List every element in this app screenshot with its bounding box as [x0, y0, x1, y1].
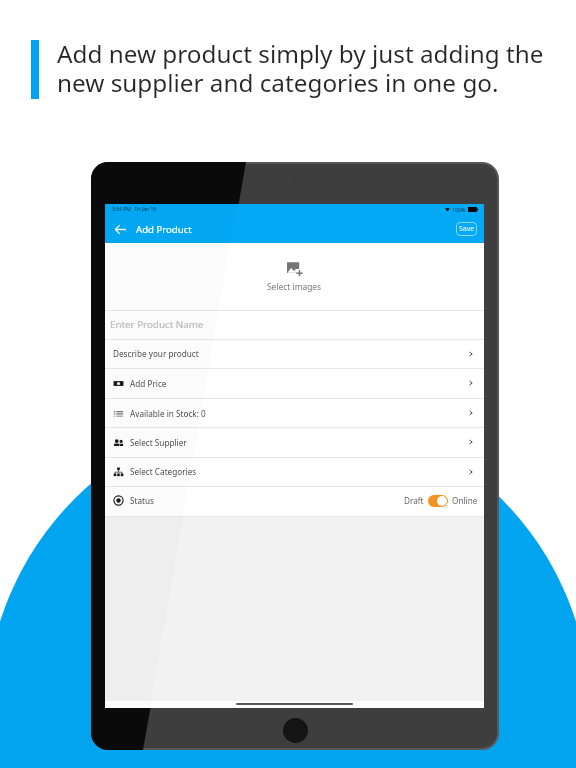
button[interactable]: Available in Stock: 0	[105, 398, 484, 428]
staticText: Available in Stock: 0	[130, 408, 206, 419]
staticText: Describe your product	[113, 348, 199, 359]
button[interactable]	[428, 495, 448, 507]
staticText: Add Product	[136, 223, 192, 236]
other: Home	[283, 718, 308, 743]
staticText: 3:54 PM Fri Jan 15	[112, 206, 157, 213]
staticText: 100%	[452, 206, 466, 213]
staticText: Online	[452, 495, 478, 506]
button[interactable]: Select images	[105, 243, 484, 310]
staticText: Save	[459, 224, 475, 234]
staticText: Status	[130, 495, 154, 506]
staticText: Draft	[404, 495, 424, 506]
staticText: Select Categories	[130, 466, 197, 477]
button[interactable]: Describe your product	[105, 339, 484, 368]
button[interactable]: Select Supplier	[105, 427, 484, 457]
staticText: Add new product simply by just adding th…	[57, 37, 544, 100]
staticText: Select Supplier	[130, 437, 187, 448]
staticText: Select images	[267, 281, 322, 292]
staticText: Enter Product Name	[110, 318, 204, 331]
button[interactable]: Status	[105, 486, 484, 515]
button[interactable]: Add Price	[105, 368, 484, 398]
staticText: Add Price	[130, 378, 167, 389]
button[interactable]: Back	[113, 222, 128, 237]
button[interactable]: Save	[456, 222, 477, 236]
button[interactable]: Select Categories	[105, 457, 484, 486]
